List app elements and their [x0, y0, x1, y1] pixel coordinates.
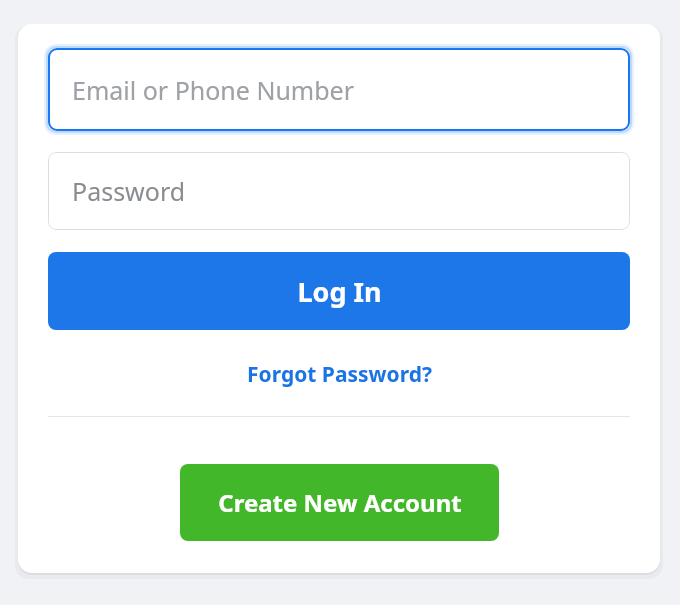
staticText: Forgot Password?	[247, 360, 432, 389]
staticText: Password	[72, 174, 186, 208]
button[interactable]: Forgot Password?	[241, 358, 438, 391]
button[interactable]: Password	[48, 152, 630, 230]
button[interactable]: Log In	[48, 252, 630, 330]
staticText: Create New Account	[218, 486, 462, 519]
button[interactable]: Create New Account	[180, 464, 499, 541]
button[interactable]: Email or Phone Number	[48, 48, 630, 131]
staticText: Log In	[297, 273, 382, 310]
staticText: Email or Phone Number	[72, 73, 355, 107]
